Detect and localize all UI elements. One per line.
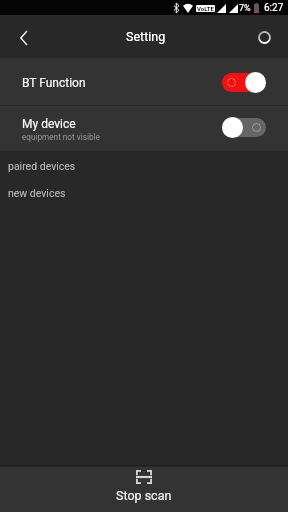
staticText: 7% (239, 3, 251, 14)
button[interactable] (222, 118, 266, 137)
staticText: Setting (126, 29, 166, 44)
staticText: Stop scan (116, 488, 172, 503)
staticText: equipment not visible (22, 132, 100, 142)
staticText: VoLTE (197, 5, 214, 12)
staticText: new devices (8, 187, 66, 199)
staticText: My device (22, 117, 76, 131)
button[interactable]: Refresh (240, 15, 288, 56)
staticText: paired devices (8, 160, 76, 172)
button[interactable] (222, 73, 266, 92)
staticText: 6:27 (264, 2, 284, 14)
button[interactable]: Back (0, 15, 48, 56)
button[interactable]: My device (0, 106, 288, 151)
button[interactable]: Stop scan (0, 467, 288, 512)
button[interactable]: BT Function (0, 58, 288, 105)
staticText: BT Function (22, 76, 86, 90)
